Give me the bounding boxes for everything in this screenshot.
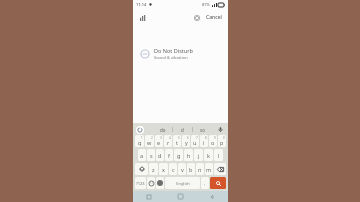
button[interactable]: d xyxy=(173,124,192,135)
button[interactable]: 0 xyxy=(218,135,226,147)
staticText: n xyxy=(198,166,202,173)
staticText: j xyxy=(198,152,200,159)
button[interactable]: c xyxy=(169,163,177,175)
button[interactable]: ?123 xyxy=(135,177,146,189)
staticText: u xyxy=(193,139,197,146)
staticText: 3 xyxy=(160,136,162,140)
staticText: English xyxy=(176,181,190,186)
button[interactable]: Clear xyxy=(191,12,202,23)
staticText: d xyxy=(158,152,162,159)
button[interactable]: . xyxy=(201,177,209,189)
button[interactable]: s xyxy=(147,149,155,161)
button[interactable]: 2 xyxy=(145,135,154,147)
button[interactable]: 5 xyxy=(173,135,181,147)
staticText: 87% xyxy=(202,2,210,7)
button[interactable]: 4 xyxy=(164,135,172,147)
staticText: a xyxy=(140,152,144,159)
button[interactable]: Cancel xyxy=(204,12,224,23)
button[interactable]: 8 xyxy=(200,135,208,147)
staticText: do xyxy=(160,127,166,133)
button[interactable]: n xyxy=(196,163,204,175)
staticText: so xyxy=(200,127,205,133)
staticText: d xyxy=(181,127,184,133)
staticText: x xyxy=(162,166,165,173)
staticText: h xyxy=(187,152,191,159)
staticText: e xyxy=(157,139,161,146)
button[interactable]: 1 xyxy=(135,135,144,147)
button[interactable]: Emoji xyxy=(147,177,155,189)
staticText: 11:14 xyxy=(136,2,147,7)
staticText: q xyxy=(138,139,142,146)
staticText: 1 xyxy=(141,136,143,140)
staticText: y xyxy=(185,139,188,146)
staticText: w xyxy=(147,139,152,146)
button[interactable]: b xyxy=(187,163,195,175)
staticText: b xyxy=(189,166,193,173)
button[interactable]: Do Not Disturb xyxy=(133,45,228,62)
staticText: ?123 xyxy=(136,181,145,186)
staticText: 2 xyxy=(151,136,153,140)
staticText: v xyxy=(181,166,184,173)
button[interactable]: Recents xyxy=(133,191,164,202)
button[interactable]: Shift xyxy=(135,163,148,175)
staticText: Cancel xyxy=(206,14,222,21)
button[interactable]: Home xyxy=(164,191,196,202)
button[interactable]: z xyxy=(149,163,158,175)
button[interactable]: Voice input xyxy=(216,125,225,134)
staticText: . xyxy=(204,180,206,187)
staticText: r xyxy=(167,139,170,146)
staticText: 0 xyxy=(223,136,225,140)
button[interactable]: Back xyxy=(196,191,228,202)
staticText: t xyxy=(176,139,178,146)
button[interactable]: 6 xyxy=(182,135,190,147)
button[interactable]: do xyxy=(153,124,172,135)
button[interactable]: l xyxy=(214,149,223,161)
staticText: Sound & vibration xyxy=(154,55,188,60)
button[interactable]: 9 xyxy=(209,135,217,147)
button[interactable]: a xyxy=(138,149,146,161)
button[interactable]: m xyxy=(205,163,213,175)
staticText: 7 xyxy=(196,136,198,140)
button[interactable]: k xyxy=(204,149,213,161)
button[interactable]: 3 xyxy=(155,135,163,147)
staticText: f xyxy=(168,152,170,159)
staticText: o xyxy=(211,139,215,146)
button[interactable]: x xyxy=(159,163,168,175)
button[interactable]: Google xyxy=(136,126,144,134)
staticText: i xyxy=(203,139,205,146)
button[interactable]: Language xyxy=(156,177,164,189)
staticText: p xyxy=(220,139,224,146)
staticText: m xyxy=(206,166,212,173)
button[interactable]: j xyxy=(194,149,203,161)
staticText: 6 xyxy=(187,136,189,140)
button[interactable]: h xyxy=(184,149,193,161)
staticText: k xyxy=(207,152,210,159)
staticText: 4 xyxy=(169,136,171,140)
button[interactable]: d xyxy=(156,149,164,161)
staticText: s xyxy=(150,152,153,159)
button[interactable]: so xyxy=(193,124,212,135)
staticText: c xyxy=(172,166,175,173)
staticText: 5 xyxy=(178,136,180,140)
button[interactable]: Backspace xyxy=(214,163,226,175)
staticText: 9 xyxy=(214,136,216,140)
button[interactable]: Search icon xyxy=(137,12,148,23)
button[interactable]: English xyxy=(165,177,200,189)
staticText: Do Not Disturb xyxy=(154,47,193,54)
button[interactable]: 7 xyxy=(191,135,199,147)
button[interactable]: v xyxy=(178,163,186,175)
button[interactable]: f xyxy=(165,149,173,161)
staticText: g xyxy=(177,152,181,159)
staticText: z xyxy=(152,166,155,173)
button[interactable]: Search xyxy=(210,177,226,189)
staticText: 8 xyxy=(205,136,207,140)
staticText: l xyxy=(218,152,220,159)
button[interactable]: g xyxy=(174,149,183,161)
